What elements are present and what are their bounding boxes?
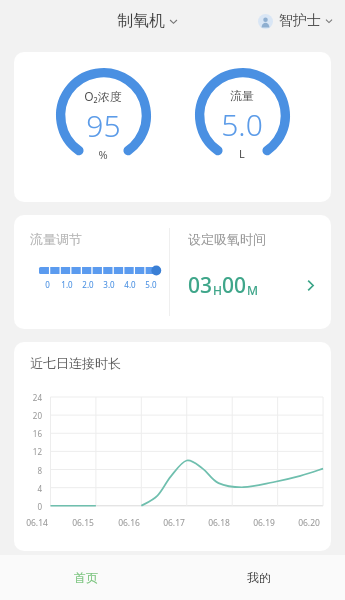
staticText: 3.0	[103, 279, 115, 290]
staticText: 5.0	[145, 279, 157, 290]
staticText: 06.14	[26, 517, 48, 529]
staticText: 00	[222, 271, 247, 300]
staticText: 06.20	[298, 517, 320, 529]
other: User avatar	[258, 14, 273, 29]
staticText: 24	[18, 392, 42, 403]
staticText: O₂浓度	[84, 88, 122, 104]
staticText: 1.0	[61, 279, 73, 290]
button[interactable]: 制氧机	[113, 8, 182, 34]
staticText: 06.15	[72, 517, 94, 529]
button[interactable]: O₂浓度	[53, 68, 153, 186]
staticText: 流量	[230, 88, 254, 103]
staticText: 4.0	[124, 279, 136, 290]
button[interactable]: 流量	[192, 68, 292, 186]
staticText: 16	[18, 428, 42, 439]
button[interactable]: 流量调节	[14, 215, 169, 329]
staticText: 8	[18, 465, 42, 476]
staticText: 智护士	[279, 12, 321, 30]
staticText: 12	[18, 446, 42, 457]
button[interactable]: 设定吸氧时间	[170, 215, 331, 329]
staticText: 5.0	[221, 104, 263, 145]
staticText: 06.19	[253, 517, 275, 529]
staticText: 95	[86, 105, 121, 146]
staticText: 06.18	[208, 517, 230, 529]
staticText: 06.16	[118, 517, 140, 529]
staticText: 0	[18, 501, 42, 512]
staticText: 设定吸氧时间	[188, 231, 266, 247]
staticText: 首页	[74, 570, 98, 585]
staticText: L	[239, 146, 245, 161]
staticText: 2.0	[82, 279, 94, 290]
staticText: 流量调节	[30, 231, 82, 247]
button[interactable]: User avatar	[254, 9, 337, 33]
staticText: M	[247, 282, 259, 298]
button[interactable]: 首页	[0, 555, 172, 600]
staticText: 0	[45, 279, 50, 290]
staticText: %	[98, 147, 108, 162]
staticText: 20	[18, 410, 42, 421]
button[interactable]: 我的	[172, 555, 345, 600]
staticText: 4	[18, 483, 42, 494]
staticText: H	[213, 282, 222, 298]
staticText: 近七日连接时长	[30, 355, 121, 371]
staticText: 03	[188, 271, 213, 300]
staticText: 我的	[247, 570, 271, 585]
staticText: 制氧机	[117, 11, 165, 31]
staticText: 06.17	[163, 517, 185, 529]
